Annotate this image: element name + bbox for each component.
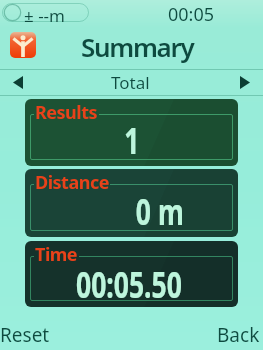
- button[interactable]: Distance: [25, 169, 238, 237]
- staticText: ± --m: [24, 4, 65, 27]
- button[interactable]: Previous tab: [0, 69, 36, 96]
- button[interactable]: Time: [25, 241, 238, 307]
- button[interactable]: Reset: [0, 324, 50, 350]
- staticText: Total: [111, 71, 150, 94]
- button[interactable]: App icon: [10, 32, 36, 58]
- staticText: 1: [124, 116, 140, 164]
- staticText: 0 m: [136, 187, 184, 235]
- staticText: 00:05: [168, 2, 215, 26]
- staticText: Summary: [81, 29, 194, 64]
- button[interactable]: Back: [220, 324, 263, 350]
- staticText: Distance: [35, 170, 109, 195]
- button[interactable]: Results: [25, 99, 238, 166]
- button[interactable]: Next tab: [227, 69, 263, 96]
- staticText: 00:05.50: [76, 260, 182, 307]
- staticText: Results: [35, 100, 98, 125]
- staticText: Time: [35, 242, 78, 267]
